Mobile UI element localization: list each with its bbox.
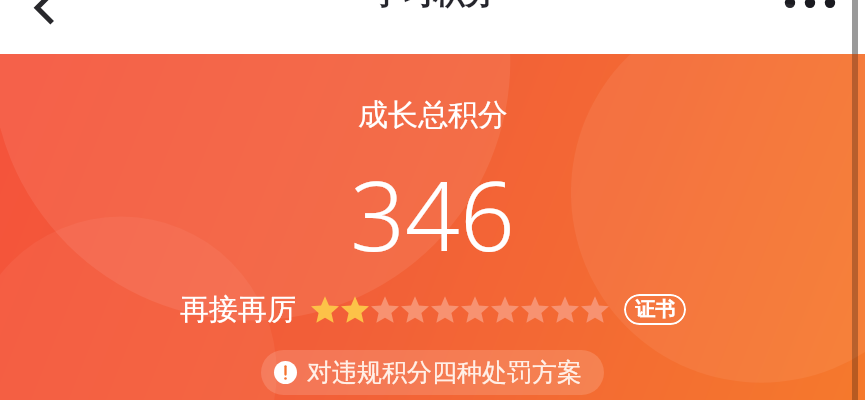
button[interactable]: More options bbox=[783, 0, 837, 22]
staticText: 证书 bbox=[635, 297, 675, 322]
button[interactable]: 对违规积分四种处罚方案 bbox=[261, 350, 604, 395]
button[interactable]: 证书 bbox=[624, 294, 686, 325]
staticText: 对违规积分四种处罚方案 bbox=[307, 357, 582, 388]
staticText: 346 bbox=[350, 148, 515, 279]
staticText: 再接再厉 bbox=[180, 291, 296, 328]
staticText: 学习积分 bbox=[371, 0, 495, 13]
staticText: 成长总积分 bbox=[358, 96, 508, 134]
button[interactable]: Back bbox=[24, 0, 68, 28]
